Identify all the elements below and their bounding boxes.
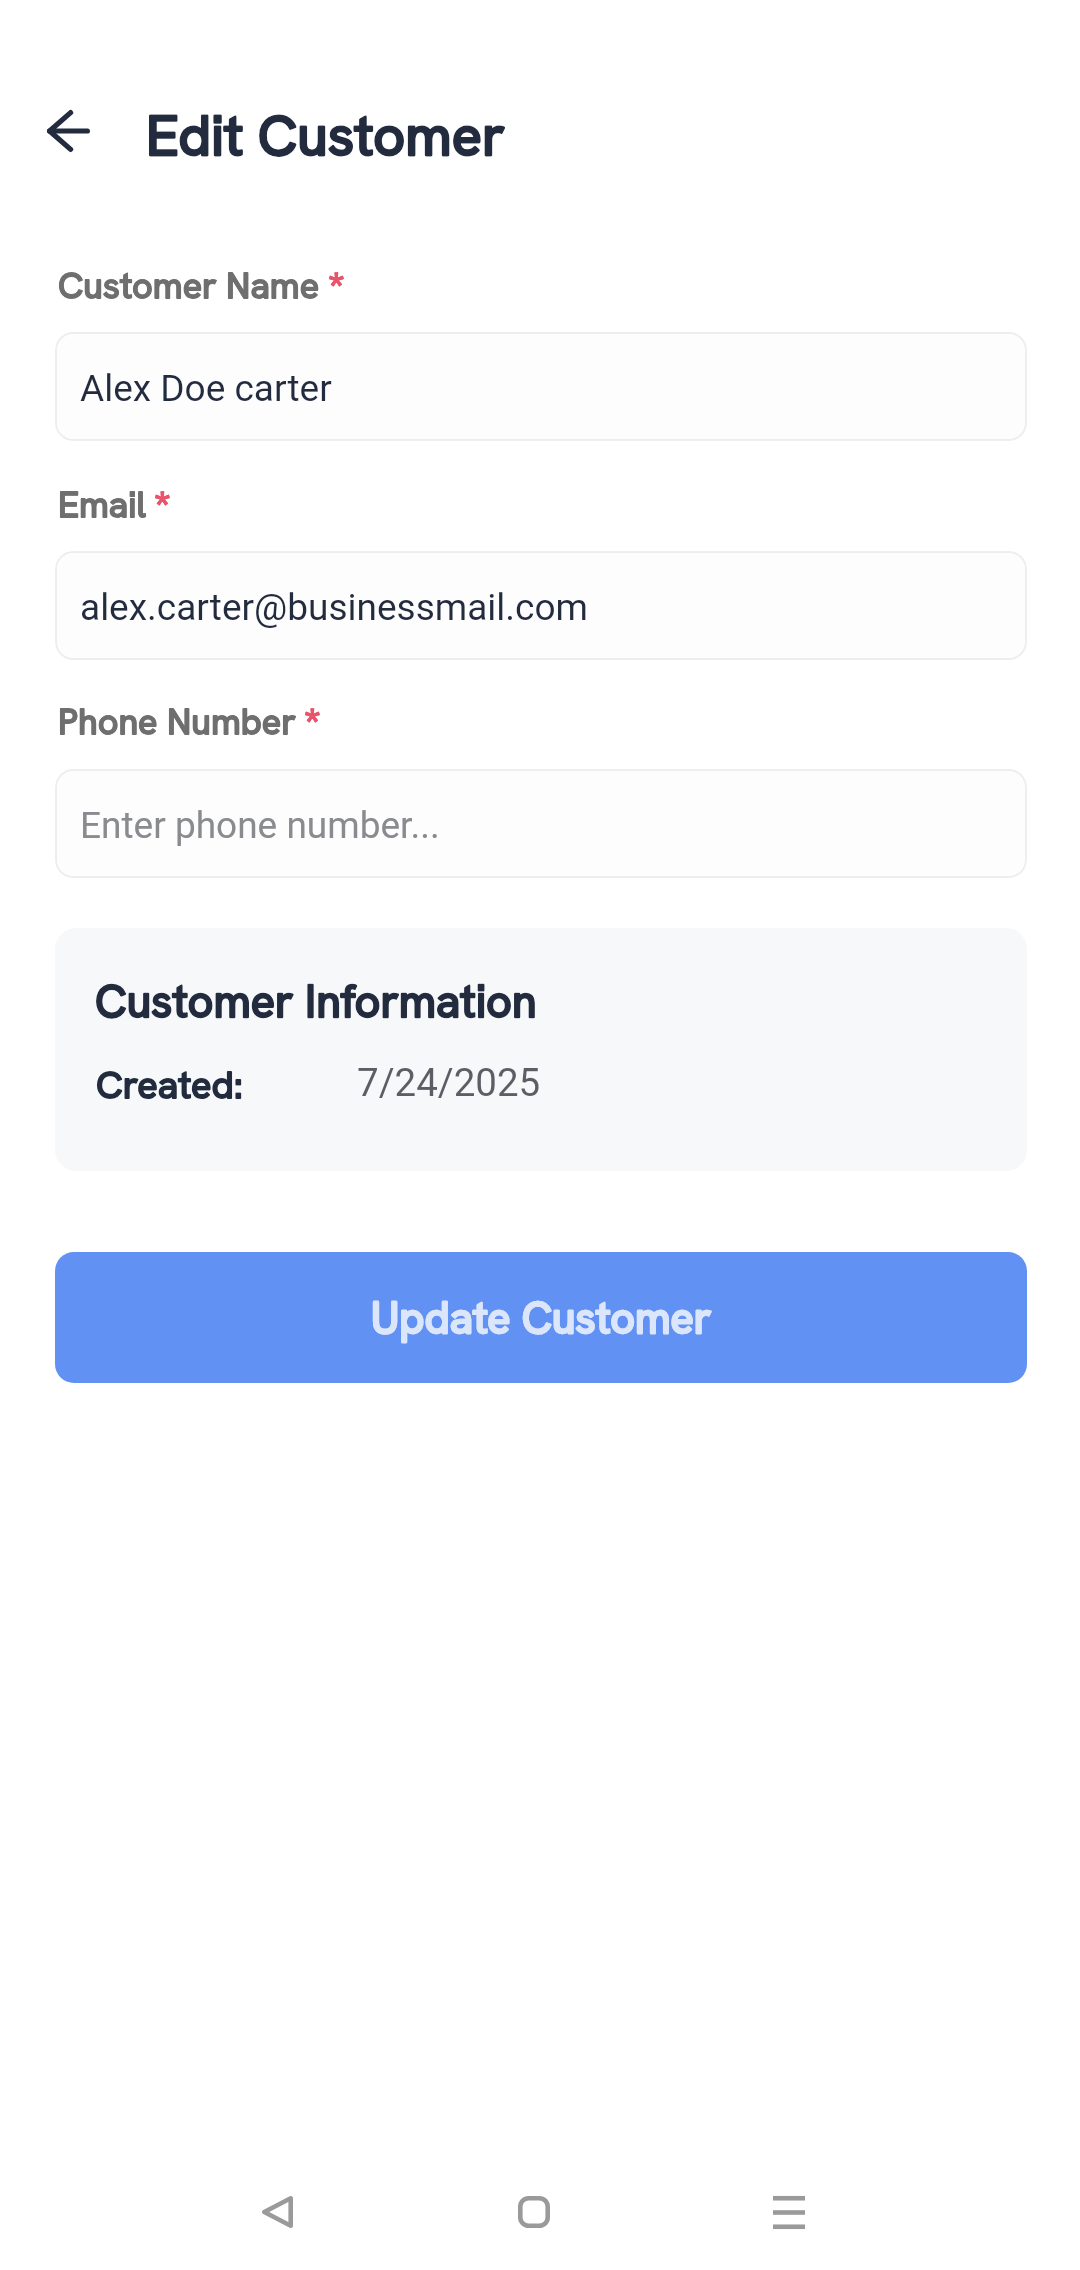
staticText: Created: — [96, 1060, 243, 1110]
button[interactable]: Alex Doe carter — [55, 332, 1027, 441]
staticText: Update Customer — [371, 1290, 712, 1346]
staticText: Customer Name — [58, 262, 320, 309]
staticText: Email — [58, 481, 146, 528]
staticText: * — [304, 696, 321, 751]
button[interactable]: Enter phone number... — [55, 769, 1027, 878]
staticText: Email — [58, 481, 146, 528]
staticText: * — [304, 696, 321, 751]
staticText: * — [154, 479, 171, 534]
staticText: Created: — [96, 1060, 243, 1110]
staticText: Phone Number — [58, 698, 296, 745]
button[interactable]: Back — [31, 95, 106, 167]
staticText: Phone Number — [58, 698, 296, 745]
button[interactable]: Recent apps — [729, 2162, 849, 2262]
staticText: Alex Doe carter — [80, 367, 332, 410]
staticText: * — [328, 260, 345, 315]
button[interactable]: alex.carter@businessmail.com — [55, 551, 1027, 660]
button[interactable]: Update Customer — [55, 1252, 1027, 1383]
staticText: Customer Information — [95, 972, 537, 1031]
staticText: Customer Information — [95, 972, 537, 1031]
staticText: Customer Name — [58, 262, 320, 309]
staticText: Edit Customer — [146, 99, 505, 172]
button[interactable]: Home — [474, 2162, 594, 2262]
staticText: 7/24/2025 — [357, 1060, 541, 1105]
staticText: Edit Customer — [146, 99, 505, 172]
staticText: Update Customer — [371, 1290, 712, 1346]
staticText: * — [328, 260, 345, 315]
staticText: * — [154, 479, 171, 534]
staticText: Enter phone number... — [80, 804, 440, 847]
staticText: alex.carter@businessmail.com — [80, 586, 589, 629]
button[interactable]: Back — [217, 2162, 337, 2262]
